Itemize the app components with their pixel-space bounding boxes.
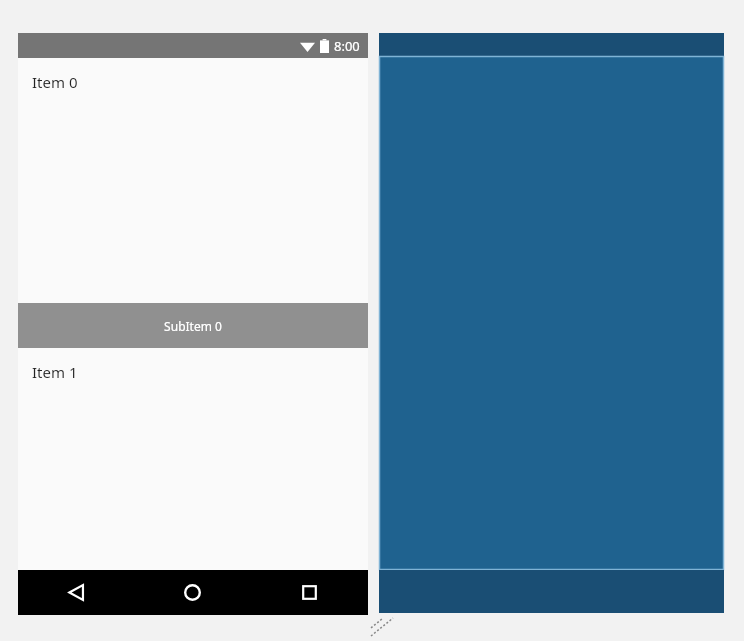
button[interactable]: SubItem 0: [18, 303, 368, 348]
button[interactable]: Item 0: [18, 58, 368, 303]
staticText: 8:00: [334, 37, 360, 55]
button[interactable]: Back: [18, 570, 134, 615]
button[interactable]: Home: [134, 570, 251, 615]
staticText: Item 0: [32, 72, 78, 92]
staticText: Item 1: [32, 362, 78, 382]
button[interactable]: Recent apps: [251, 570, 368, 615]
button[interactable]: Item 1: [18, 348, 368, 570]
staticText: SubItem 0: [164, 318, 222, 334]
